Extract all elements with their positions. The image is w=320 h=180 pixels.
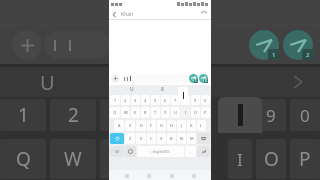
button[interactable]: X [136,133,146,144]
button[interactable]: Emoji [125,146,136,157]
button[interactable]: Send SIM 2 [199,74,208,83]
button[interactable]: 0 [201,95,210,105]
staticText: 6 [164,98,167,103]
staticText: H [170,123,173,128]
button[interactable]: T [151,107,160,118]
button[interactable]: Back [167,171,176,180]
staticText: 2 [306,51,310,59]
button[interactable]: Backspace [197,133,210,144]
staticText: 9 [194,98,197,103]
button[interactable]: I [181,107,190,118]
button[interactable]: U [171,107,180,118]
button[interactable]: D [136,120,146,131]
button[interactable]: M [187,133,196,144]
button[interactable]: V [157,133,166,144]
button[interactable]: C [147,133,156,144]
button[interactable]: J [177,120,186,131]
button[interactable]: O [191,107,200,118]
staticText: I [237,148,243,171]
staticText: A [118,123,121,128]
button[interactable]: 6 [161,95,170,105]
button[interactable]: 4 [141,95,150,105]
staticText: . [190,149,192,154]
staticText: L [200,123,203,128]
button[interactable]: Keyboard [189,171,198,180]
staticText: 2 [205,79,207,83]
button[interactable]: W [121,107,130,118]
staticText: J [181,123,183,128]
staticText: O [264,146,279,172]
staticText: Y [164,110,167,115]
button[interactable]: N [177,133,186,144]
staticText: 8 [161,86,164,93]
staticText: 1 [114,98,117,103]
staticText: X [140,136,143,141]
staticText: V [160,136,163,141]
staticText: 9 [266,104,276,127]
staticText: K [190,123,193,128]
staticText: R [144,110,147,115]
button[interactable]: ‹ English(US) › [137,146,184,157]
staticText: Q [16,146,31,172]
button[interactable]: Back [109,9,120,20]
staticText: B [170,136,173,141]
button[interactable]: G [157,120,166,131]
staticText: Z [129,136,132,141]
staticText: 0 [204,98,207,103]
staticText: E [134,110,137,115]
button[interactable]: 7 [171,95,180,105]
staticText: ‹ English(US) › [151,150,171,154]
staticText: 7 [174,98,177,103]
staticText: U [40,69,55,96]
staticText: W [64,146,82,172]
button[interactable]: Send SIM 1 [189,74,198,83]
button[interactable]: F [147,120,156,131]
button[interactable]: H [167,120,176,131]
button[interactable]: A [114,120,124,131]
button[interactable]: Shift [110,133,124,144]
button[interactable]: Home [144,171,153,180]
button[interactable] [122,74,188,83]
staticText: T [154,110,157,115]
staticText: 4 [144,98,147,103]
button[interactable]: R [141,107,150,118]
button[interactable]: Enter [197,146,210,157]
staticText: 2 [124,98,127,103]
staticText: U [174,110,177,115]
button[interactable]: Y [161,107,170,118]
staticText: P [299,146,311,172]
button[interactable]: 9 [191,95,200,105]
button[interactable]: 8 [181,95,190,105]
staticText: G [160,123,163,128]
staticText: P [204,110,207,115]
staticText: 5 [154,98,157,103]
button[interactable]: 2 [121,95,130,105]
staticText: E [118,146,129,172]
button[interactable]: Recents [122,171,131,180]
button[interactable]: Add attachment [111,74,120,83]
button[interactable]: 1 [110,95,120,105]
button[interactable]: B [167,133,176,144]
button[interactable]: !#1 [110,146,124,157]
staticText: O [194,110,198,115]
button[interactable]: L [197,120,206,131]
button[interactable]: Q [110,107,120,118]
staticText: M [190,136,194,141]
button[interactable]: P [201,107,210,118]
staticText: 0 [300,104,310,127]
button[interactable]: Z [125,133,135,144]
staticText: C [150,136,153,141]
staticText: U [130,86,134,93]
staticText: 2 [68,102,79,128]
button[interactable]: E [131,107,140,118]
button[interactable]: K [187,120,196,131]
button[interactable]: 5 [151,95,160,105]
button[interactable]: 3 [131,95,140,105]
staticText: 3 [134,98,137,103]
staticText: N [180,136,184,141]
button[interactable]: S [125,120,135,131]
staticText: W [124,110,128,115]
button[interactable]: Call [199,9,209,19]
staticText: 1 [195,79,197,83]
